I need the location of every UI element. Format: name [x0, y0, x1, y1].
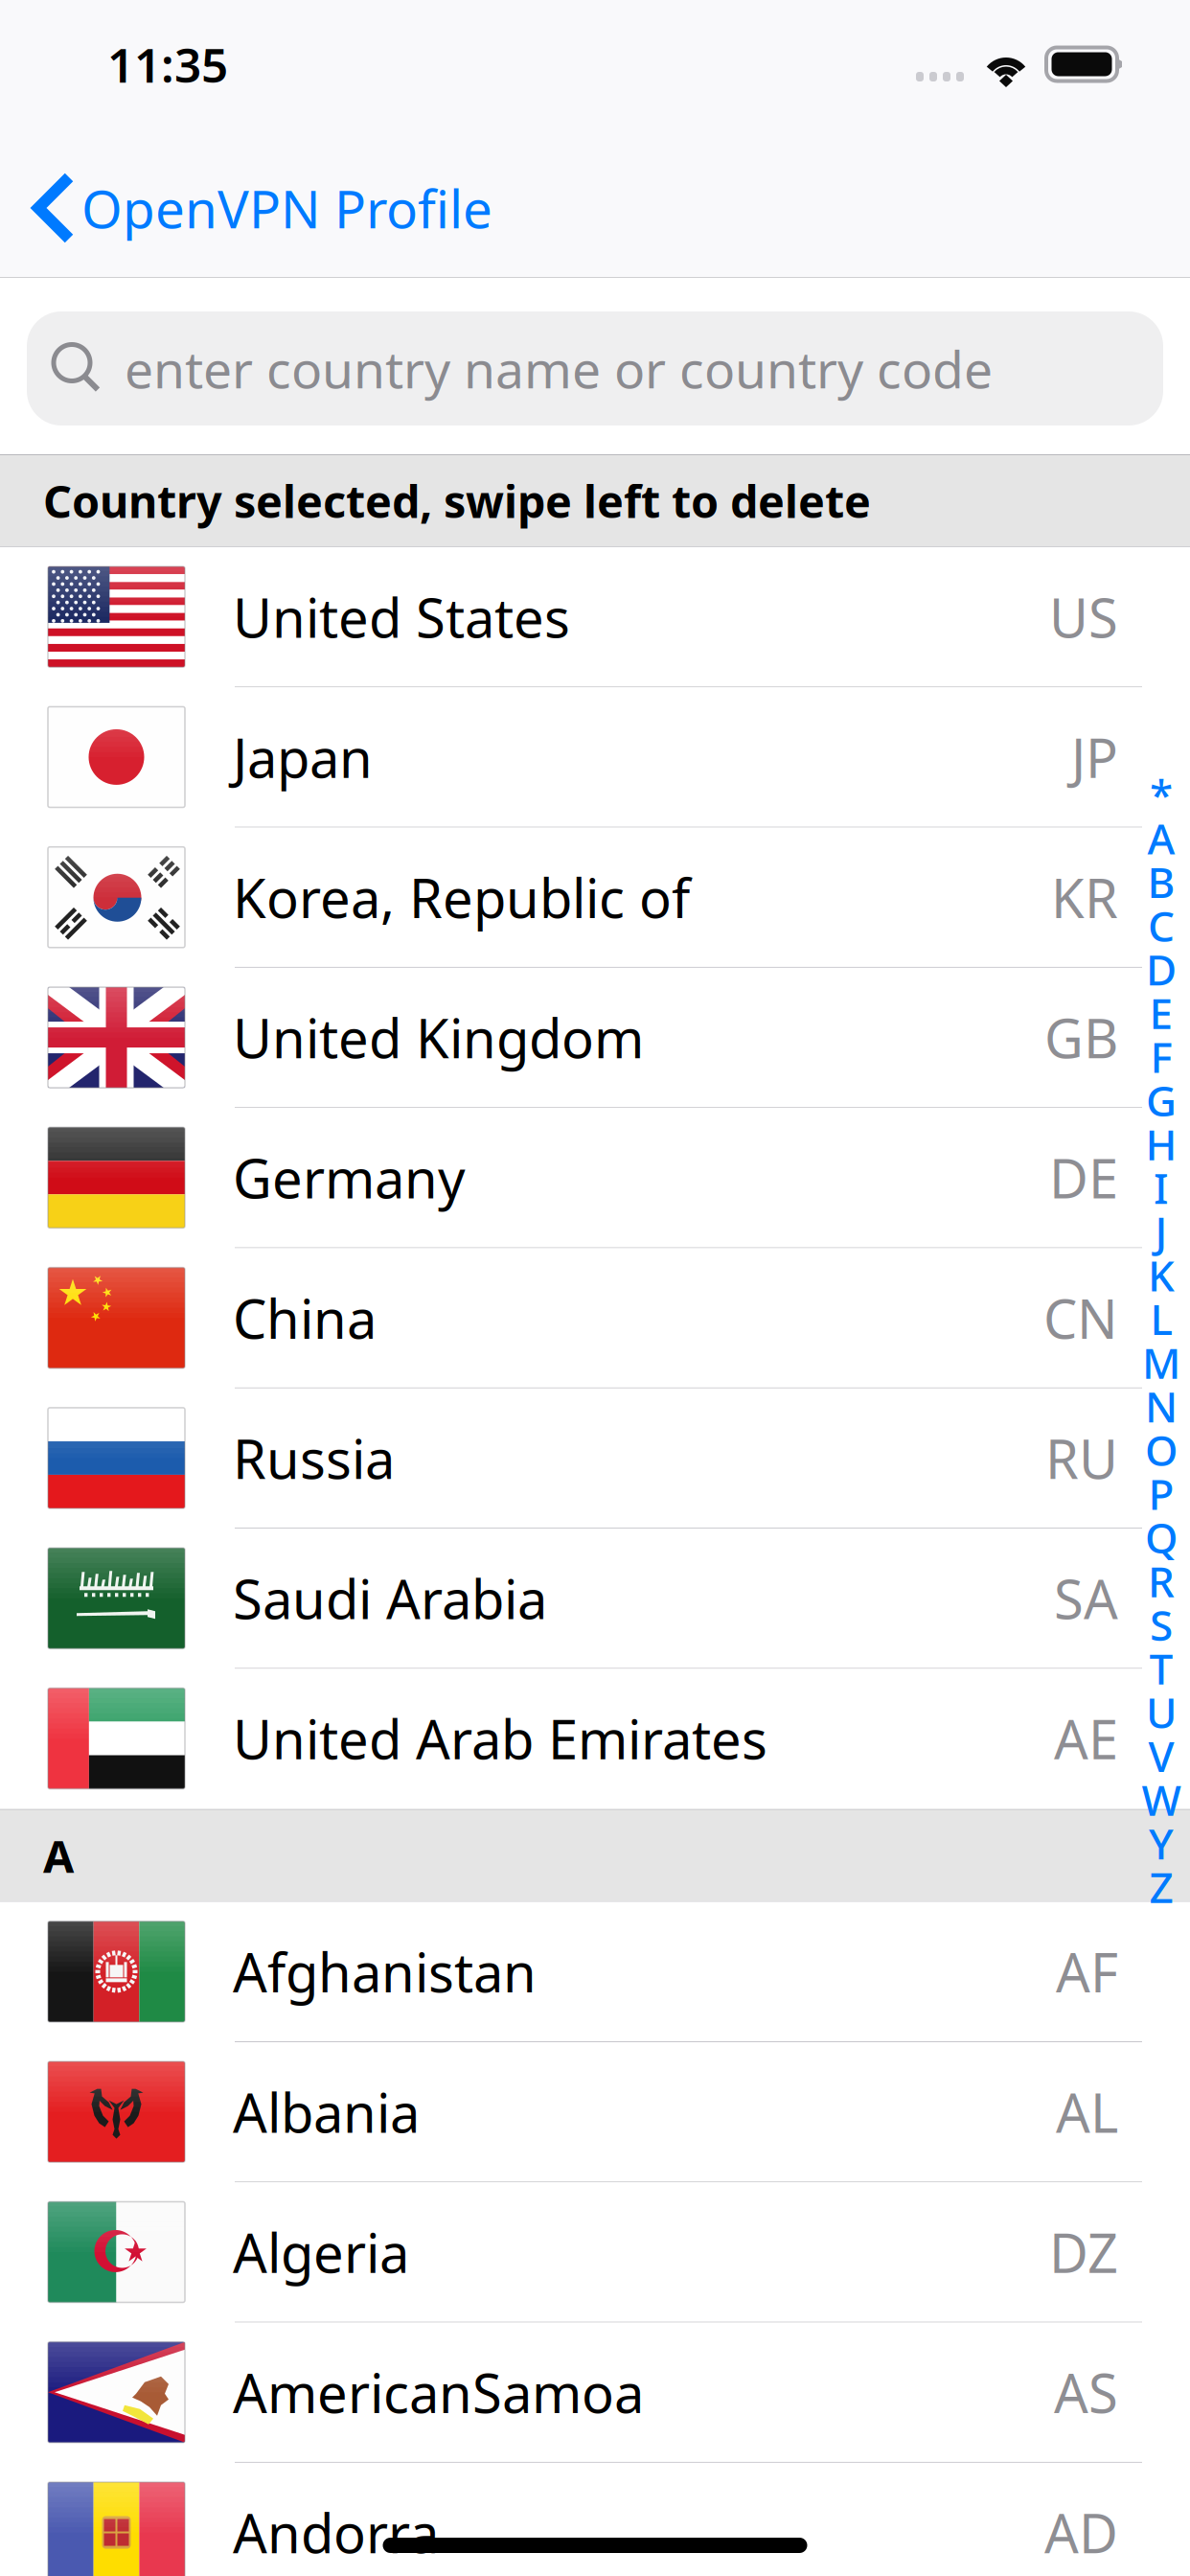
button[interactable]: V [1136, 1734, 1186, 1778]
staticText: M [1142, 1334, 1180, 1390]
staticText: J [1155, 1203, 1167, 1259]
staticText: F [1150, 1028, 1172, 1084]
button[interactable]: K [1136, 1253, 1186, 1297]
button[interactable]: B [1136, 860, 1186, 904]
button[interactable]: F [1136, 1035, 1186, 1078]
button[interactable]: W [1136, 1778, 1186, 1821]
staticText: I [1154, 1160, 1169, 1216]
button[interactable]: Andorra [0, 2463, 1190, 2576]
button[interactable]: H [1136, 1122, 1186, 1166]
button[interactable]: C [1136, 904, 1186, 947]
staticText: KR [1051, 862, 1118, 933]
button[interactable]: United Arab Emirates [0, 1669, 1190, 1809]
staticText: United Kingdom [233, 1002, 644, 1073]
staticText: Russia [233, 1422, 395, 1494]
button[interactable]: United States [0, 547, 1190, 687]
staticText: H [1145, 1116, 1177, 1172]
staticText: C [1148, 897, 1175, 953]
staticText: AF [1056, 1936, 1118, 2007]
button[interactable]: M [1136, 1341, 1186, 1384]
button[interactable]: P [1136, 1472, 1186, 1515]
staticText: Afghanistan [233, 1936, 537, 2007]
button[interactable]: G [1136, 1078, 1186, 1122]
button[interactable]: Russia [0, 1388, 1190, 1529]
staticText: O [1145, 1422, 1178, 1478]
button[interactable]: Q [1136, 1515, 1186, 1559]
staticText: T [1149, 1640, 1173, 1696]
staticText: enter country name or country code [125, 335, 993, 402]
staticText: V [1148, 1728, 1174, 1784]
staticText: K [1148, 1247, 1175, 1303]
staticText: A [1147, 810, 1175, 866]
staticText: AmericanSamoa [233, 2357, 644, 2428]
button[interactable]: Japan [0, 687, 1190, 828]
staticText: GB [1044, 1002, 1118, 1073]
button[interactable]: L [1136, 1297, 1186, 1341]
button[interactable]: Z [1136, 1865, 1186, 1909]
button[interactable]: Korea, Republic of [0, 828, 1190, 968]
staticText: Germany [233, 1142, 466, 1213]
staticText: Andorra [233, 2497, 439, 2568]
button[interactable]: T [1136, 1646, 1186, 1690]
staticText: B [1147, 854, 1175, 910]
button[interactable]: OpenVPN Profile [0, 171, 492, 245]
staticText: US [1049, 581, 1118, 653]
button[interactable]: R [1136, 1559, 1186, 1603]
staticText: Z [1149, 1859, 1173, 1915]
staticText: Country selected, swipe left to delete [43, 471, 871, 530]
staticText: OpenVPN Profile [81, 173, 492, 243]
staticText: China [233, 1282, 377, 1354]
staticText: G [1146, 1072, 1177, 1128]
button[interactable]: enter country name or country code [27, 311, 1163, 425]
staticText: JP [1071, 721, 1118, 793]
staticText: Japan [233, 721, 373, 793]
button[interactable]: J [1136, 1209, 1186, 1253]
button[interactable]: D [1136, 947, 1186, 991]
staticText: 11:35 [107, 33, 228, 96]
button[interactable]: Algeria [0, 2182, 1190, 2323]
staticText: N [1145, 1378, 1178, 1434]
staticText: L [1150, 1291, 1172, 1347]
staticText: AE [1054, 1703, 1118, 1774]
staticText: E [1149, 985, 1173, 1041]
button[interactable]: AmericanSamoa [0, 2323, 1190, 2463]
staticText: D [1146, 941, 1177, 997]
staticText: DE [1049, 1142, 1118, 1213]
staticText: CN [1043, 1282, 1118, 1354]
button[interactable]: A [1136, 816, 1186, 860]
staticText: Q [1145, 1509, 1178, 1565]
button[interactable]: Germany [0, 1108, 1190, 1248]
button[interactable]: I [1136, 1166, 1186, 1209]
button[interactable]: O [1136, 1428, 1186, 1472]
button[interactable]: United Kingdom [0, 968, 1190, 1108]
button[interactable]: Y [1136, 1821, 1186, 1865]
button[interactable]: E [1136, 991, 1186, 1035]
staticText: Albania [233, 2076, 420, 2148]
staticText: Korea, Republic of [233, 862, 690, 933]
staticText: RU [1045, 1422, 1118, 1494]
staticText: United States [233, 581, 570, 653]
staticText: S [1150, 1597, 1173, 1653]
button[interactable]: U [1136, 1690, 1186, 1734]
staticText: R [1148, 1553, 1175, 1609]
staticText: P [1148, 1465, 1174, 1521]
button[interactable]: China [0, 1248, 1190, 1388]
staticText: AL [1056, 2076, 1118, 2148]
button[interactable]: S [1136, 1603, 1186, 1646]
button[interactable]: Albania [0, 2042, 1190, 2182]
button[interactable]: Afghanistan [0, 1902, 1190, 2042]
staticText: SA [1054, 1563, 1118, 1634]
staticText: * [1150, 766, 1173, 822]
staticText: A [43, 1826, 74, 1885]
button[interactable]: Saudi Arabia [0, 1529, 1190, 1669]
staticText: United Arab Emirates [233, 1703, 767, 1774]
button[interactable]: N [1136, 1384, 1186, 1428]
button[interactable]: * [1136, 772, 1186, 816]
staticText: Y [1149, 1815, 1174, 1871]
staticText: DZ [1049, 2216, 1118, 2288]
staticText: Saudi Arabia [233, 1563, 547, 1634]
staticText: AS [1054, 2357, 1118, 2428]
staticText: U [1146, 1684, 1177, 1740]
staticText: AD [1044, 2497, 1118, 2568]
staticText: Algeria [233, 2216, 409, 2288]
